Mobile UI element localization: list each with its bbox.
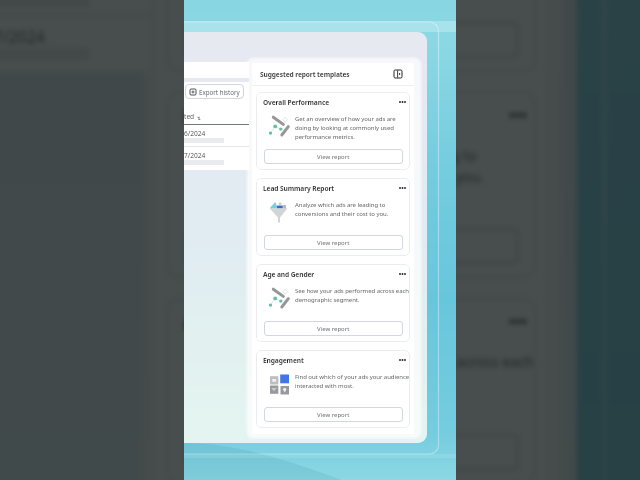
staticText: View report (313, 31, 392, 50)
staticText: Analyze which ads are leading to convers… (260, 146, 536, 187)
staticText: Engagement (263, 356, 304, 365)
staticText: 7/2024 (0, 26, 46, 48)
staticText: See how your ads performed across each d… (260, 353, 536, 394)
staticText: ted (184, 112, 195, 121)
staticText: View report (317, 325, 350, 333)
staticText: Age and Gender (263, 270, 315, 279)
staticText: Suggested report templates (260, 70, 350, 79)
staticText: See how your ads performed across each d… (295, 287, 410, 304)
button[interactable]: View report (186, 228, 519, 264)
button[interactable]: View report (264, 149, 403, 164)
button[interactable]: Age and Gender (256, 264, 410, 342)
staticText: View report (317, 239, 350, 247)
button[interactable]: Lead Summary Report (256, 178, 410, 256)
button[interactable]: Change layout (392, 68, 404, 80)
staticText: Analyze which ads are leading to convers… (295, 201, 410, 218)
staticText: Lead Summary Report (263, 184, 335, 193)
staticText: 6/2024 (184, 129, 206, 138)
staticText: 7/2024 (184, 151, 206, 160)
staticText: Get an overview of how your ads are doin… (295, 115, 410, 141)
staticText: Get an overview of how your ads are doin… (260, 0, 536, 2)
button[interactable]: View report (264, 407, 403, 422)
staticText: View report (313, 238, 392, 257)
button[interactable]: View report (186, 22, 519, 58)
button[interactable]: Lead Summary Report (166, 91, 536, 278)
staticText: Overall Performance (263, 98, 330, 107)
staticText: Export history (199, 88, 240, 96)
staticText: View report (317, 153, 350, 161)
staticText: Find out which of your ads your audience… (295, 373, 410, 390)
button[interactable]: View report (264, 235, 403, 250)
button[interactable]: View report (186, 434, 519, 470)
button[interactable]: Overall Performance (166, 0, 536, 72)
button[interactable]: View report (264, 321, 403, 336)
staticText: View report (317, 411, 350, 419)
button[interactable]: Engagement (256, 350, 410, 428)
button[interactable]: Export history (185, 84, 244, 99)
staticText: Age and Gender (183, 312, 308, 334)
staticText: View report (313, 444, 392, 463)
staticText: ⇅ (197, 116, 201, 121)
button[interactable]: Age and Gender (166, 298, 536, 480)
button[interactable]: Overall Performance (256, 92, 410, 170)
staticText: Lead Summary Report (183, 106, 356, 127)
